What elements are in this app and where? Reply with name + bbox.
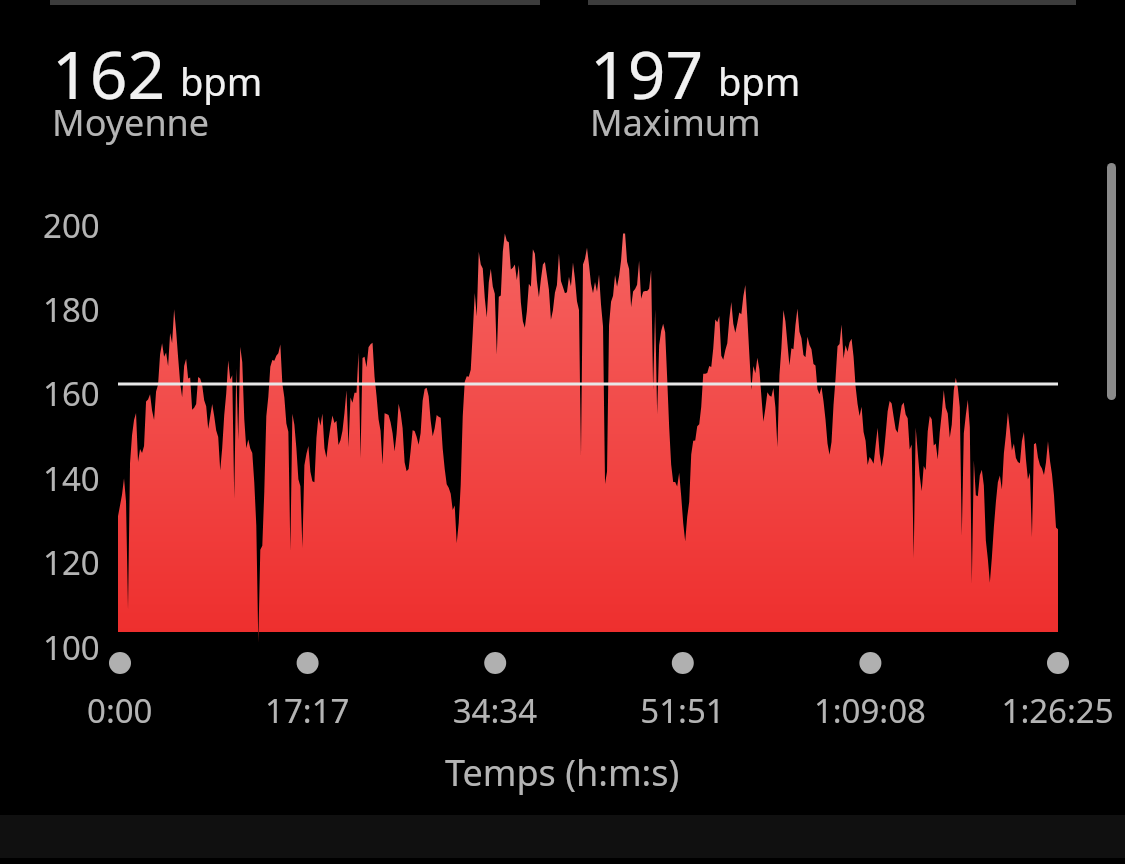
button[interactable]: Heart rate graph over workout time (0, 0, 1125, 864)
other: Heart rate graph over workout time (0, 0, 1125, 864)
